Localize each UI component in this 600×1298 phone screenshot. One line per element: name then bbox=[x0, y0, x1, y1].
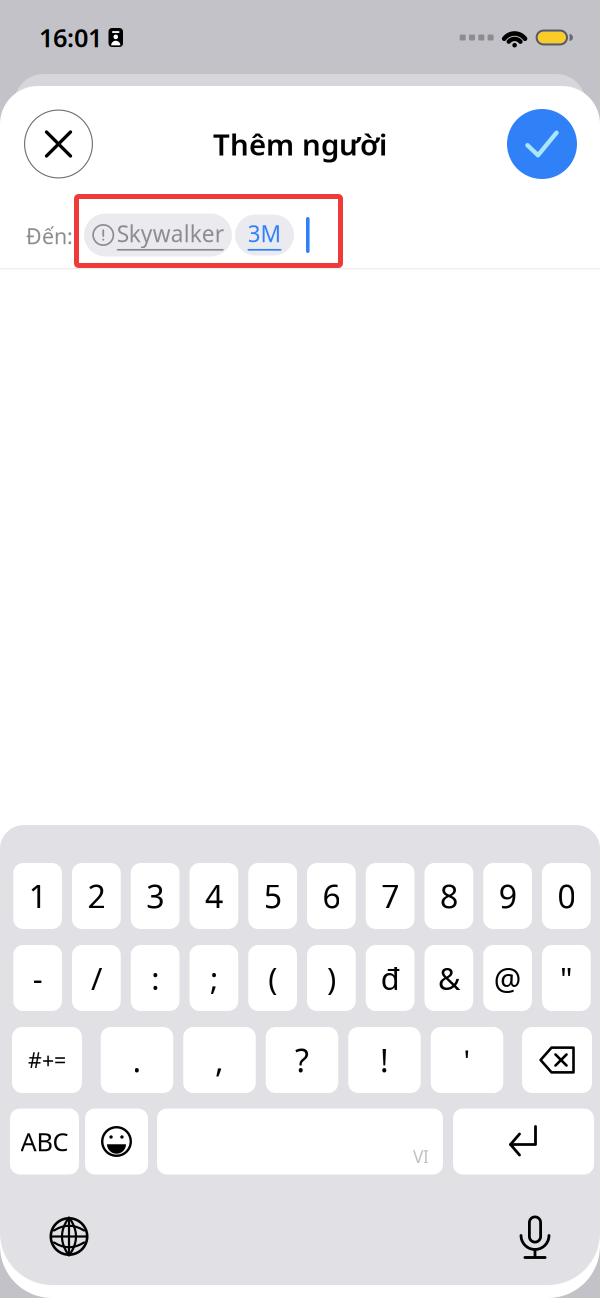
button[interactable]: Emoji bbox=[85, 1108, 148, 1174]
button[interactable]: - bbox=[13, 945, 62, 1011]
button[interactable]: " bbox=[542, 945, 591, 1011]
button[interactable]: 0 bbox=[542, 863, 591, 929]
staticText: - bbox=[33, 958, 43, 998]
button[interactable]: ? bbox=[266, 1027, 338, 1093]
staticText: 8 bbox=[440, 875, 458, 917]
button[interactable]: 6 bbox=[307, 863, 356, 929]
button[interactable]: Close bbox=[24, 109, 93, 178]
staticText: 0 bbox=[557, 875, 575, 917]
staticText: 9 bbox=[499, 875, 517, 917]
staticText: Đến: bbox=[26, 222, 73, 250]
staticText: 5 bbox=[264, 875, 282, 917]
button[interactable]: & bbox=[424, 945, 473, 1011]
staticText: ( bbox=[268, 958, 277, 998]
button[interactable]: 2 bbox=[72, 863, 121, 929]
staticText: #+= bbox=[28, 1046, 66, 1074]
button[interactable]: ' bbox=[431, 1027, 503, 1093]
button[interactable]: 3M bbox=[235, 214, 294, 255]
staticText: ) bbox=[327, 958, 336, 998]
staticText: & bbox=[438, 958, 460, 998]
staticText: " bbox=[560, 958, 573, 998]
button[interactable]: : bbox=[131, 945, 180, 1011]
button[interactable]: / bbox=[72, 945, 121, 1011]
staticText: Thêm người bbox=[213, 124, 387, 163]
button[interactable]: Dictation bbox=[504, 1205, 566, 1267]
button[interactable]: #+= bbox=[12, 1027, 82, 1093]
staticText: đ bbox=[381, 958, 400, 998]
staticText: ; bbox=[210, 958, 218, 998]
button[interactable]: 9 bbox=[483, 863, 532, 929]
button[interactable]: , bbox=[183, 1027, 256, 1093]
button[interactable]: . bbox=[101, 1027, 173, 1093]
staticText: ' bbox=[463, 1040, 470, 1079]
staticText: ! bbox=[380, 1039, 389, 1081]
staticText: : bbox=[151, 958, 159, 998]
button[interactable]: 1 bbox=[13, 863, 62, 929]
button[interactable]: Next keyboard bbox=[38, 1205, 100, 1267]
button[interactable]: Space bbox=[157, 1108, 443, 1174]
staticText: / bbox=[91, 958, 102, 998]
button[interactable]: 3 bbox=[131, 863, 180, 929]
button[interactable] bbox=[453, 1108, 594, 1174]
staticText: 16:01 bbox=[39, 21, 102, 54]
staticText: 2 bbox=[87, 875, 105, 917]
button[interactable]: Done bbox=[507, 109, 577, 179]
staticText: @ bbox=[494, 958, 522, 998]
button[interactable]: Skywalker bbox=[84, 213, 232, 256]
staticText: ? bbox=[295, 1039, 309, 1081]
staticText: Skywalker bbox=[117, 218, 224, 248]
button[interactable]: 4 bbox=[189, 863, 238, 929]
staticText: ABC bbox=[20, 1125, 68, 1158]
button[interactable]: ( bbox=[248, 945, 297, 1011]
button[interactable] bbox=[522, 1027, 592, 1093]
button[interactable]: ; bbox=[189, 945, 238, 1011]
button[interactable]: 7 bbox=[366, 863, 415, 929]
button[interactable]: @ bbox=[483, 945, 532, 1011]
button[interactable]: 8 bbox=[424, 863, 473, 929]
staticText: 4 bbox=[205, 875, 223, 917]
button[interactable] bbox=[85, 1108, 148, 1174]
button[interactable]: 5 bbox=[248, 863, 297, 929]
button[interactable]: ABC bbox=[10, 1108, 79, 1174]
staticText: 3M bbox=[247, 218, 281, 248]
staticText: 1 bbox=[29, 875, 47, 917]
staticText: , bbox=[215, 1039, 224, 1081]
button[interactable]: Return bbox=[453, 1108, 594, 1174]
button[interactable]: đ bbox=[366, 945, 415, 1011]
staticText: 7 bbox=[381, 875, 399, 917]
button[interactable]: ) bbox=[307, 945, 356, 1011]
button[interactable]: Delete bbox=[522, 1027, 592, 1093]
staticText: . bbox=[132, 1039, 141, 1081]
staticText: VI bbox=[413, 1145, 429, 1168]
button[interactable]: ! bbox=[348, 1027, 421, 1093]
staticText: 3 bbox=[146, 875, 164, 917]
staticText: 6 bbox=[322, 875, 340, 917]
